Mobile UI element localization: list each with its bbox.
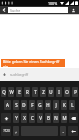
button[interactable]: Bitte geben Sie einen Suchbegriff ein <box>1 59 65 67</box>
button[interactable]: X <box>21 113 27 123</box>
button[interactable]: N <box>53 113 59 123</box>
button[interactable]: E <box>16 87 22 97</box>
staticText: Suche <box>10 8 21 13</box>
staticText: L <box>71 102 74 108</box>
staticText: C <box>31 115 34 121</box>
button[interactable]: M <box>61 113 67 123</box>
button[interactable]: Shift <box>1 113 11 123</box>
button[interactable]: Back <box>0 6 8 14</box>
button[interactable]: Q <box>1 87 6 97</box>
button[interactable]: H <box>45 100 51 110</box>
button[interactable]: J <box>53 100 59 110</box>
staticText: I <box>58 89 60 95</box>
button[interactable]: I <box>56 87 62 97</box>
button[interactable]: R <box>24 87 30 97</box>
button[interactable]: D <box>21 100 27 110</box>
button[interactable]: K <box>61 100 67 110</box>
staticText: A <box>6 102 9 108</box>
button[interactable]: . <box>60 126 66 136</box>
staticText: E <box>18 89 21 95</box>
button[interactable]: G <box>37 100 43 110</box>
button[interactable]: C <box>29 113 35 123</box>
staticText: B <box>47 115 50 121</box>
staticText: Z <box>42 89 45 95</box>
staticText: R <box>26 89 29 95</box>
button[interactable]: O <box>64 87 70 97</box>
staticText: Y <box>15 115 18 121</box>
staticText: U <box>49 89 53 95</box>
button[interactable]: Suche <box>8 7 68 13</box>
button[interactable]: P <box>72 87 78 97</box>
button[interactable]: W <box>8 87 14 97</box>
staticText: P <box>74 89 77 95</box>
button[interactable]: A <box>4 100 11 110</box>
button[interactable]: S <box>13 100 19 110</box>
button[interactable]: Clipboard <box>2 72 7 77</box>
staticText: V <box>39 115 42 121</box>
staticText: F <box>31 102 34 108</box>
button[interactable]: T <box>32 87 38 97</box>
staticText: X <box>23 115 26 121</box>
button[interactable]: B <box>45 113 51 123</box>
button[interactable]: Y <box>13 113 19 123</box>
button[interactable]: , <box>13 126 19 136</box>
staticText: N <box>54 115 58 121</box>
button[interactable]: Account <box>68 6 79 14</box>
staticText: S <box>15 102 18 108</box>
staticText: Bitte geben Sie einen Suchbegriff ein <box>3 59 65 67</box>
button[interactable]: Backspace <box>69 113 78 123</box>
button[interactable]: Z <box>40 87 46 97</box>
staticText: 100% <box>48 1 58 6</box>
staticText: K <box>63 102 66 108</box>
staticText: . <box>62 128 64 134</box>
staticText: M <box>62 115 67 121</box>
button[interactable]: F <box>29 100 35 110</box>
button[interactable]: Search <box>68 126 78 136</box>
staticText: H <box>46 102 50 108</box>
staticText: , <box>15 128 17 134</box>
staticText: W <box>9 89 14 95</box>
staticText: ?123 <box>3 129 10 133</box>
staticText: G <box>38 102 42 108</box>
staticText: J <box>55 102 57 108</box>
button[interactable]: ?123 <box>1 126 11 136</box>
button[interactable]: U <box>48 87 54 97</box>
staticText: Q <box>2 89 6 95</box>
staticText: T <box>34 89 37 95</box>
button[interactable]: L <box>69 100 75 110</box>
staticText: D <box>22 102 26 108</box>
staticText: O <box>65 89 69 95</box>
staticText: suchbegriff <box>10 72 29 77</box>
button[interactable]: V <box>37 113 43 123</box>
